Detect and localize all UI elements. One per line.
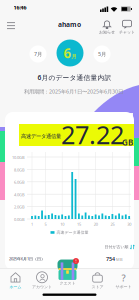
staticText: ホーム (9, 284, 21, 289)
staticText: 2025年6月1日（日） (9, 256, 45, 261)
button[interactable]: 6 (56, 39, 83, 66)
staticText: 高速データ通信量 (56, 230, 88, 235)
staticText: 16:46 (13, 4, 26, 11)
staticText: 利用期間：2025年6月1日〜2025年6月30日 (24, 88, 123, 95)
button[interactable]: 2025年6月1日（日） (5, 251, 134, 267)
button[interactable]: ! (53, 257, 81, 286)
staticText: 4.0GB (14, 192, 25, 197)
staticText: 6 (63, 44, 71, 62)
staticText: チャット (119, 30, 135, 35)
staticText: 5月 (98, 50, 106, 58)
staticText: 5 (44, 221, 46, 227)
button[interactable]: 5月 (93, 45, 110, 62)
staticText: 20 (94, 221, 98, 227)
button[interactable]: ホーム (2, 271, 28, 290)
staticText: 高速データ通信量 (21, 133, 61, 140)
button[interactable]: ストア (84, 271, 110, 290)
staticText: 30 (127, 221, 131, 227)
staticText: 月 (71, 53, 76, 60)
button[interactable]: Menu (4, 18, 20, 34)
button[interactable]: 日付が古い順 (95, 243, 135, 251)
staticText: ? (121, 272, 125, 284)
staticText: サポート (115, 284, 131, 289)
staticText: 754 (106, 255, 115, 263)
staticText: アカウント (32, 284, 52, 289)
staticText: 6月のデータ通信量内訳 (37, 73, 111, 82)
staticText: GB (122, 137, 133, 148)
staticText: 1 (31, 221, 33, 227)
staticText: クエスト (59, 281, 75, 286)
staticText: 8.0GB (14, 167, 25, 172)
button[interactable]: アカウント (29, 271, 55, 290)
button[interactable]: チャット (118, 19, 136, 35)
staticText: 0.0GB (14, 217, 25, 222)
staticText: 10 (60, 221, 64, 227)
button[interactable]: ? (110, 271, 136, 290)
staticText: MB (116, 257, 123, 262)
staticText: 27.22 (61, 117, 124, 151)
staticText: ahamo (58, 20, 81, 29)
staticText: 15 (77, 221, 81, 227)
button[interactable]: 7月 (29, 45, 46, 62)
staticText: 日付が古い順 (104, 244, 128, 249)
staticText: 25 (110, 221, 114, 227)
staticText: 7月 (34, 50, 42, 58)
staticText: お知らせ (99, 30, 115, 35)
button[interactable]: お知らせ (98, 19, 116, 35)
staticText: 10.0GB (12, 155, 25, 160)
staticText: 2.0GB (14, 204, 25, 210)
staticText: 6.0GB (14, 180, 25, 185)
staticText: ストア (91, 284, 103, 289)
